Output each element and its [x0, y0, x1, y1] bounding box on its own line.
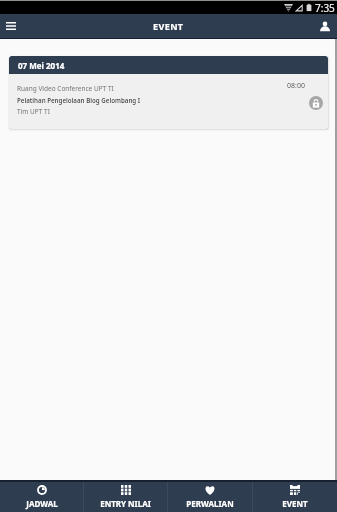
staticText: Tim UPT TI — [17, 107, 50, 116]
button[interactable]: Account — [316, 17, 334, 35]
staticText: 08:00 — [287, 81, 305, 91]
button[interactable]: 07 Mei 2014 — [9, 56, 328, 129]
button[interactable]: EVENT — [253, 482, 337, 512]
button[interactable]: Menu — [2, 17, 20, 35]
button[interactable]: PERWALIAN — [168, 482, 252, 512]
staticText: JADWAL — [26, 498, 58, 509]
button[interactable]: ENTRY NILAI — [84, 482, 167, 512]
button[interactable]: JADWAL — [0, 482, 83, 512]
staticText: 07 Mei 2014 — [18, 60, 65, 71]
staticText: Ruang Video Conference UPT TI — [17, 84, 114, 93]
staticText: Pelatihan Pengelolaan Blog Gelombang I — [17, 96, 141, 104]
staticText: ENTRY NILAI — [100, 498, 151, 509]
staticText: EVENT — [282, 498, 308, 509]
staticText: PERWALIAN — [186, 498, 234, 509]
staticText: EVENT — [153, 20, 184, 32]
staticText: 7:35 — [315, 1, 335, 14]
